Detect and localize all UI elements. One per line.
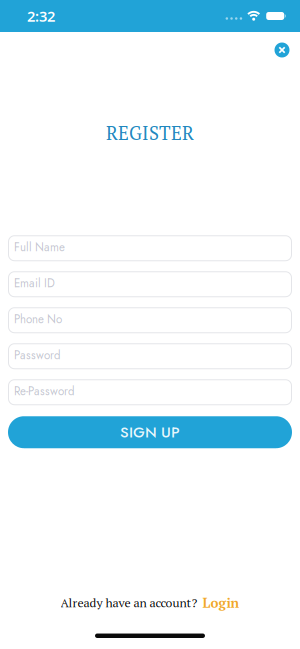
- staticText: Login: [202, 594, 239, 611]
- staticText: Email ID: [14, 275, 55, 291]
- button[interactable]: SIGN UP: [8, 416, 292, 448]
- button[interactable]: Phone No: [8, 307, 292, 333]
- staticText: Full Name: [14, 239, 65, 255]
- staticText: Phone No: [14, 311, 62, 327]
- staticText: Re-Password: [14, 383, 75, 399]
- button[interactable]: Already have an account?: [60, 594, 239, 611]
- staticText: SIGN UP: [120, 421, 180, 443]
- staticText: REGISTER: [106, 120, 194, 145]
- staticText: Already have an account?: [60, 594, 197, 611]
- button[interactable]: Re-Password: [8, 379, 292, 405]
- button[interactable]: Full Name: [8, 235, 292, 261]
- button[interactable]: Close: [274, 42, 289, 57]
- button[interactable]: Password: [8, 343, 292, 369]
- button[interactable]: Email ID: [8, 271, 292, 297]
- staticText: Password: [14, 347, 61, 363]
- staticText: 2:32: [27, 6, 55, 26]
